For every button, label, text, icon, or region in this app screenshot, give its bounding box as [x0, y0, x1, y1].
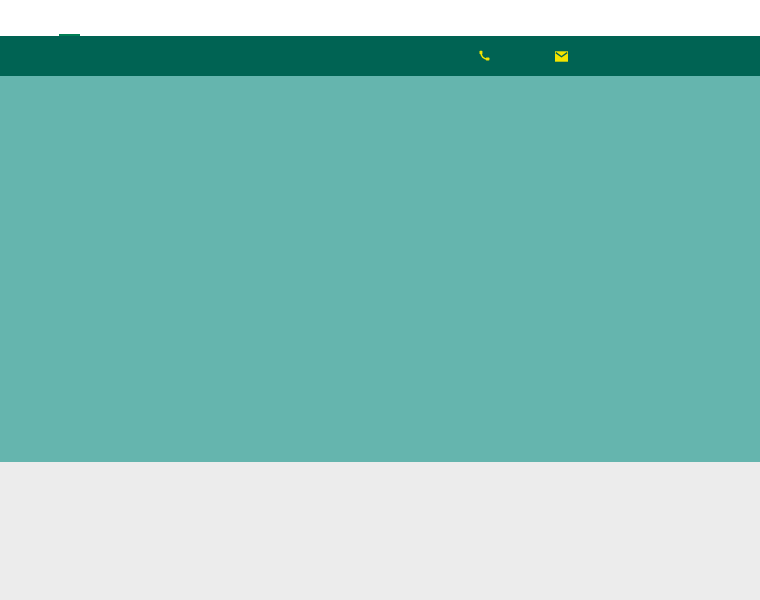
button[interactable]: Call: [462, 36, 506, 76]
button[interactable]: Email: [539, 36, 583, 76]
